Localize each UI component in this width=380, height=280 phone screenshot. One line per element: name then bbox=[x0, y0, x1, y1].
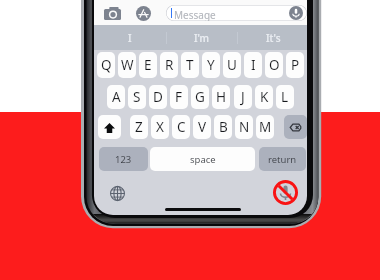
staticText: K bbox=[260, 88, 269, 106]
button[interactable]: Dictate bbox=[288, 5, 304, 21]
button[interactable]: K bbox=[255, 85, 273, 109]
button[interactable]: Q bbox=[97, 52, 115, 78]
staticText: It's bbox=[266, 31, 281, 45]
button[interactable]: V bbox=[193, 115, 211, 139]
button[interactable]: N bbox=[235, 115, 253, 139]
button[interactable]: Z bbox=[130, 115, 148, 139]
staticText: W bbox=[121, 56, 134, 74]
staticText: V bbox=[198, 118, 207, 136]
button[interactable]: I'm bbox=[166, 25, 238, 50]
button[interactable]: D bbox=[149, 85, 167, 109]
button[interactable]: Camera bbox=[102, 4, 123, 22]
button[interactable]: App Store bbox=[134, 4, 153, 23]
staticText: S bbox=[133, 88, 141, 106]
staticText: I'm bbox=[194, 31, 210, 45]
button[interactable]: W bbox=[118, 52, 136, 78]
button[interactable]: It's bbox=[237, 25, 307, 50]
staticText: space bbox=[190, 153, 216, 166]
staticText: return bbox=[268, 153, 297, 166]
button[interactable]: O bbox=[265, 52, 283, 78]
staticText: N bbox=[239, 118, 250, 136]
button[interactable]: J bbox=[234, 85, 252, 109]
button[interactable]: C bbox=[172, 115, 190, 139]
staticText: M bbox=[259, 118, 272, 136]
staticText: C bbox=[177, 118, 186, 136]
button[interactable]: I bbox=[244, 52, 262, 78]
staticText: T bbox=[186, 56, 194, 74]
staticText: X bbox=[156, 118, 164, 136]
button[interactable]: H bbox=[212, 85, 230, 109]
button[interactable]: M bbox=[256, 115, 274, 139]
staticText: Y bbox=[207, 56, 215, 74]
staticText: E bbox=[144, 56, 152, 74]
button[interactable]: 123 bbox=[99, 147, 148, 171]
button[interactable]: L bbox=[276, 85, 294, 109]
button[interactable]: I bbox=[94, 25, 166, 50]
staticText: O bbox=[269, 56, 280, 74]
button[interactable]: A bbox=[107, 85, 125, 109]
button[interactable]: Shift bbox=[98, 115, 121, 139]
staticText: I bbox=[128, 31, 132, 45]
staticText: H bbox=[216, 88, 227, 106]
staticText: U bbox=[227, 56, 237, 74]
button[interactable]: X bbox=[151, 115, 169, 139]
button[interactable]: Y bbox=[202, 52, 220, 78]
staticText: I bbox=[251, 56, 256, 74]
button[interactable]: Change keyboard bbox=[106, 182, 128, 204]
button[interactable]: Microphone off bbox=[271, 178, 299, 206]
staticText: J bbox=[241, 88, 245, 106]
button[interactable]: G bbox=[191, 85, 209, 109]
button[interactable]: return bbox=[259, 147, 306, 171]
button[interactable]: space bbox=[150, 147, 255, 171]
staticText: G bbox=[195, 88, 205, 106]
staticText: Message bbox=[174, 8, 216, 21]
button[interactable]: E bbox=[139, 52, 157, 78]
staticText: P bbox=[291, 56, 300, 74]
staticText: R bbox=[165, 56, 174, 74]
button[interactable]: Message bbox=[166, 5, 307, 21]
staticText: L bbox=[281, 88, 289, 106]
staticText: Q bbox=[101, 56, 112, 74]
staticText: D bbox=[153, 88, 163, 106]
staticText: F bbox=[175, 88, 183, 106]
button[interactable]: T bbox=[181, 52, 199, 78]
button[interactable]: S bbox=[128, 85, 146, 109]
staticText: B bbox=[219, 118, 228, 136]
staticText: 123 bbox=[115, 153, 132, 166]
staticText: Z bbox=[135, 118, 143, 136]
button[interactable]: R bbox=[160, 52, 178, 78]
button[interactable]: Backspace bbox=[284, 115, 307, 139]
button[interactable]: P bbox=[286, 52, 304, 78]
button[interactable]: B bbox=[214, 115, 232, 139]
button[interactable]: F bbox=[170, 85, 188, 109]
button[interactable]: U bbox=[223, 52, 241, 78]
staticText: A bbox=[112, 88, 121, 106]
